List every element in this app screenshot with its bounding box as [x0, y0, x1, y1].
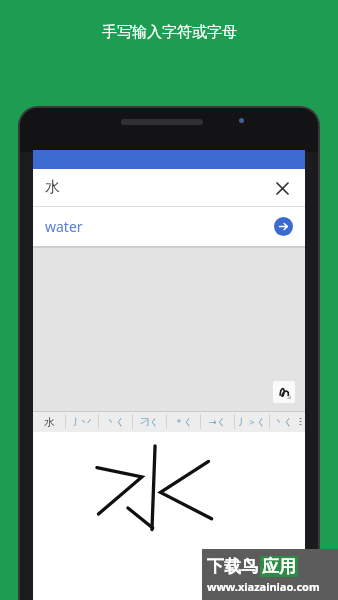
- staticText: 手写输入字符或字母: [102, 23, 237, 42]
- button[interactable]: 丿丷: [66, 411, 98, 432]
- button[interactable]: ＊く: [167, 411, 200, 432]
- button[interactable]: 丿＞く: [235, 411, 269, 432]
- button[interactable]: 丶く: [99, 411, 132, 432]
- staticText: 丶く: [106, 416, 125, 427]
- staticText: water: [45, 217, 83, 236]
- staticText: 丿丷: [73, 416, 91, 427]
- staticText: 应用: [262, 556, 296, 577]
- staticText: ＊く: [174, 416, 193, 427]
- staticText: 丿＞く: [238, 416, 266, 427]
- button[interactable]: Go: [274, 217, 293, 236]
- staticText: →く: [209, 416, 226, 427]
- staticText: 下载鸟: [207, 556, 258, 577]
- button[interactable]: Clear: [271, 177, 293, 199]
- button[interactable]: water: [33, 207, 305, 246]
- button[interactable]: 水: [33, 169, 305, 206]
- button[interactable]: 水: [33, 411, 65, 432]
- button[interactable]: Handwriting area: [33, 432, 305, 600]
- button[interactable]: →く: [201, 411, 234, 432]
- staticText: 水: [45, 178, 60, 197]
- button[interactable]: More candidates: [296, 411, 305, 432]
- staticText: www.xiazainiao.com: [207, 579, 320, 594]
- staticText: 水: [44, 415, 55, 429]
- staticText: 刁く: [140, 416, 159, 427]
- staticText: 丶く: [274, 416, 293, 427]
- button[interactable]: Handwriting input: [273, 381, 295, 403]
- button[interactable]: 刁く: [133, 411, 166, 432]
- button[interactable]: 丶く: [270, 411, 296, 432]
